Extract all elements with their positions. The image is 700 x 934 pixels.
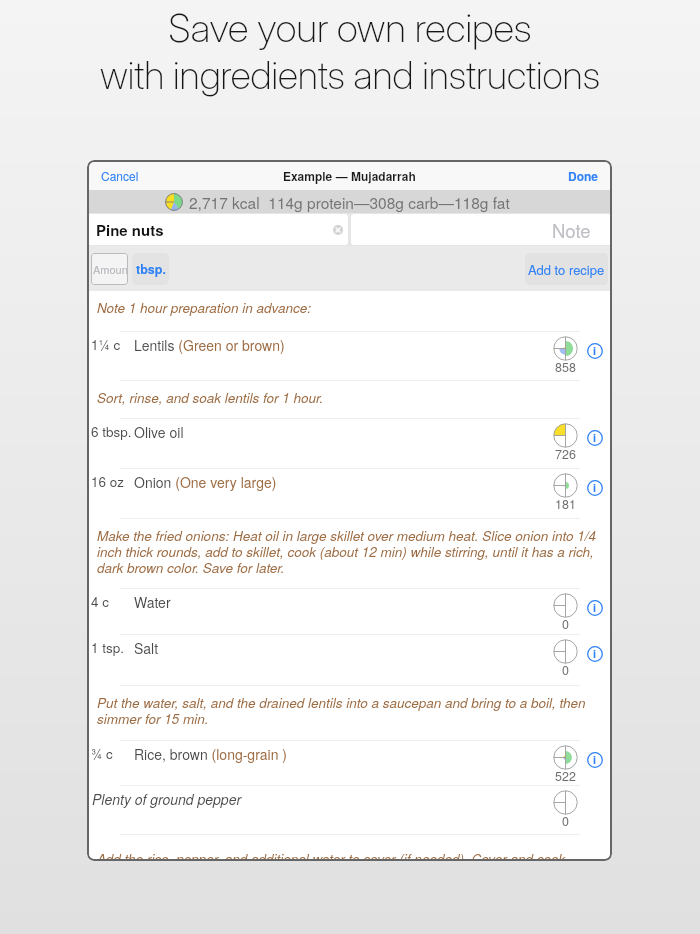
staticText: 2,717 kcal 114g protein—308g carb—118g f… xyxy=(189,191,510,213)
staticText: i xyxy=(593,752,597,768)
staticText: Example — Mujadarrah xyxy=(283,167,416,184)
staticText: 726 xyxy=(555,445,576,463)
button[interactable]: 4 c xyxy=(87,589,612,635)
staticText: 181 xyxy=(555,495,576,513)
button[interactable]: Nutrition info xyxy=(587,600,603,616)
staticText: Add to recipe xyxy=(528,260,605,279)
staticText: i xyxy=(593,646,597,662)
button[interactable]: Add to recipe xyxy=(525,253,608,285)
staticText: Onion (One very large) xyxy=(134,472,277,492)
staticText: Save your own recipes xyxy=(168,4,532,51)
button[interactable]: Cancel xyxy=(87,165,145,186)
staticText: Note 1 hour preparation in advance: xyxy=(97,298,311,317)
staticText: 4 c xyxy=(91,592,110,611)
staticText: i xyxy=(593,480,597,496)
staticText: 0 xyxy=(562,661,569,679)
staticText: 6 tbsp. xyxy=(91,422,132,441)
staticText: Amount xyxy=(93,261,128,277)
button[interactable]: Make the fried onions: Heat oil in large… xyxy=(87,519,612,589)
staticText: 858 xyxy=(555,358,576,376)
staticText: Note xyxy=(552,217,591,243)
button[interactable]: 1 tsp. xyxy=(87,635,612,686)
button[interactable]: Plenty of ground pepper xyxy=(87,786,612,835)
button[interactable]: Note 1 hour preparation in advance: xyxy=(87,291,612,332)
staticText: Plenty of ground pepper xyxy=(92,789,242,809)
staticText: i xyxy=(593,430,597,446)
button[interactable]: Sort, rinse, and soak lentils for 1 hour… xyxy=(87,381,612,419)
staticText: 0 xyxy=(562,812,569,830)
staticText: Sort, rinse, and soak lentils for 1 hour… xyxy=(97,388,324,407)
staticText: Water xyxy=(134,592,171,612)
button[interactable]: Note xyxy=(351,214,612,245)
button[interactable]: 6 tbsp. xyxy=(87,419,612,469)
button[interactable]: ¾ c xyxy=(87,741,612,786)
button[interactable]: Amount xyxy=(91,253,128,285)
button[interactable]: tbsp. xyxy=(132,253,169,285)
button[interactable]: Put the water, salt, and the drained len… xyxy=(87,686,612,741)
staticText: Add the rice, pepper, and additional wat… xyxy=(97,849,566,861)
button[interactable]: 1¼ c xyxy=(87,332,612,381)
staticText: i xyxy=(593,343,597,359)
button[interactable]: Nutrition info xyxy=(587,343,603,359)
staticText: 1 tsp. xyxy=(91,638,125,657)
staticText: with ingredients and instructions xyxy=(100,52,600,98)
staticText: tbsp. xyxy=(136,260,166,278)
staticText: Olive oil xyxy=(134,422,184,442)
staticText: 522 xyxy=(555,767,576,785)
button[interactable]: Clear text xyxy=(333,225,343,235)
staticText: Pine nuts xyxy=(96,219,164,240)
staticText: Salt xyxy=(134,638,159,658)
staticText: i xyxy=(593,600,597,616)
staticText: ¾ c xyxy=(91,744,113,763)
staticText: Make the fried onions: Heat oil in large… xyxy=(97,526,604,577)
button[interactable]: Nutrition info xyxy=(587,752,603,768)
staticText: Lentils (Green or brown) xyxy=(134,335,285,355)
button[interactable]: Nutrition info xyxy=(587,480,603,496)
staticText: Put the water, salt, and the drained len… xyxy=(97,693,604,728)
staticText: Rice, brown (long-grain ) xyxy=(134,744,287,764)
staticText: 1¼ c xyxy=(91,335,121,354)
button[interactable]: Nutrition info xyxy=(587,430,603,446)
button[interactable]: Add the rice, pepper, and additional wat… xyxy=(87,835,612,861)
button[interactable]: Pine nuts xyxy=(87,214,348,245)
button[interactable]: Done xyxy=(562,165,612,186)
staticText: 16 oz xyxy=(91,472,125,491)
staticText: 0 xyxy=(562,615,569,633)
button[interactable]: Nutrition info xyxy=(587,646,603,662)
button[interactable]: 16 oz xyxy=(87,469,612,519)
